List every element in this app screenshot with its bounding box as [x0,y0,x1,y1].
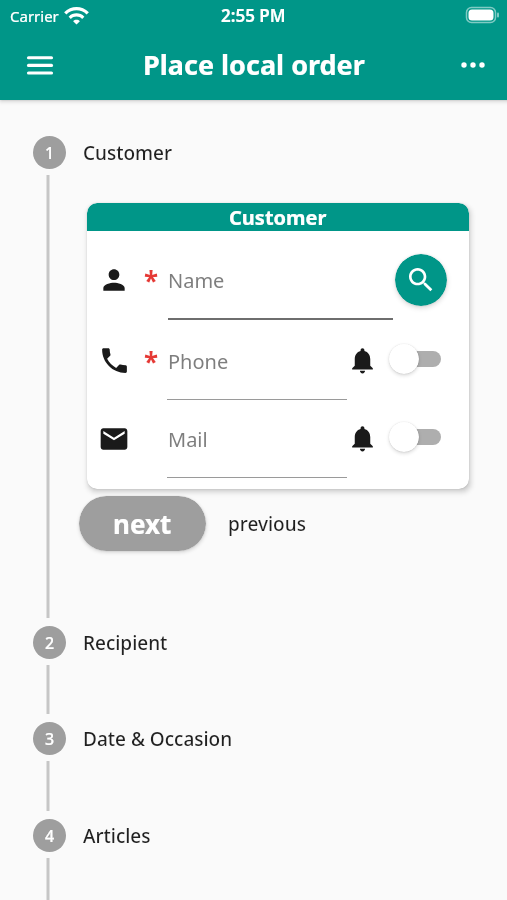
staticText: * [144,263,159,298]
button[interactable]: 4 [33,819,66,852]
staticText: Recipient [83,630,168,656]
staticText: Mail [168,426,208,453]
staticText: 2:55 PM [221,4,286,27]
staticText: Articles [83,823,151,849]
staticText: Name [168,267,225,294]
staticText: next [113,506,172,541]
staticText: 1 [45,142,55,164]
button[interactable] [389,344,441,374]
staticText: Customer [229,204,327,231]
button[interactable]: 1 [33,136,66,169]
staticText: Customer [83,140,173,166]
staticText: 2 [45,632,55,654]
button[interactable]: 3 [33,722,66,755]
button[interactable] [389,422,441,452]
staticText: Phone [168,348,229,375]
button[interactable]: previous [222,508,312,540]
button[interactable] [22,47,58,83]
button[interactable] [395,254,447,306]
button[interactable]: next [79,496,206,551]
staticText: Date & Occasion [83,726,233,752]
staticText: Carrier [10,6,59,26]
staticText: previous [228,511,306,537]
staticText: 4 [45,825,55,847]
staticText: 3 [45,728,55,750]
button[interactable]: 2 [33,626,66,659]
staticText: * [144,344,159,379]
button[interactable] [457,49,489,81]
staticText: Place local order [143,46,365,83]
